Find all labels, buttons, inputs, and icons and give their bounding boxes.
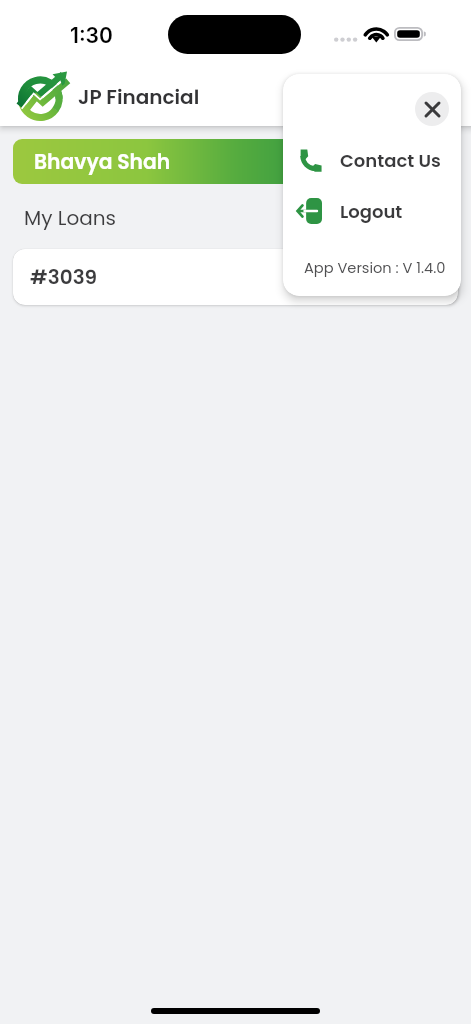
staticText: Logout [340,199,403,224]
button[interactable]: #3039 [13,249,458,305]
staticText: App Version : V 1.4.0 [304,258,446,278]
staticText: My Loans [24,204,117,232]
staticText: Contact Us [340,148,441,173]
staticText: JP Financial [78,83,200,111]
button[interactable]: Bhavya Shah [13,139,458,184]
staticText: Bhavya Shah [34,148,171,176]
button[interactable]: Close menu [415,92,449,126]
button[interactable]: Contact Us [283,138,461,182]
staticText: #3039 [30,263,98,291]
staticText: 1:30 [70,23,113,48]
button[interactable]: Logout [283,189,461,233]
